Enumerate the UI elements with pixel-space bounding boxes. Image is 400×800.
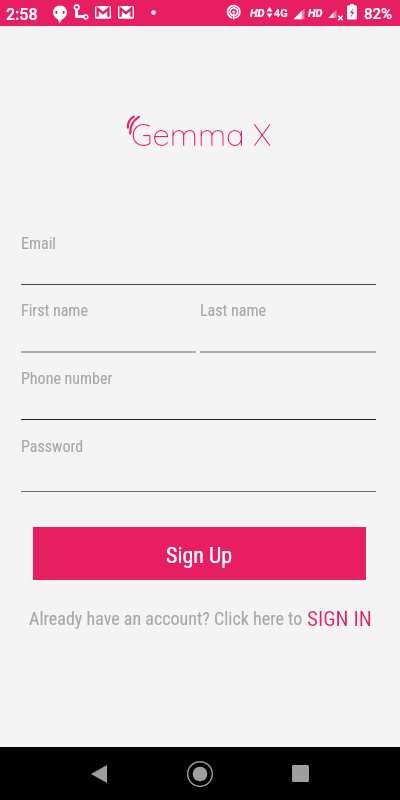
button[interactable]: Home [165, 747, 235, 800]
button[interactable]: First name [21, 301, 196, 357]
button[interactable]: Recent apps [265, 747, 335, 800]
staticText: Gemma X [131, 115, 272, 154]
button[interactable]: Phone number [21, 369, 376, 425]
button[interactable]: Email [21, 234, 376, 290]
staticText: HD [308, 7, 323, 20]
staticText: Already have an account? Click here to [29, 608, 303, 629]
staticText: First name [21, 301, 88, 320]
button[interactable]: Last name [200, 301, 376, 357]
staticText: Password [21, 437, 84, 456]
staticText: HD [250, 7, 265, 20]
button[interactable]: Password [21, 437, 376, 497]
staticText: 82% [364, 5, 393, 23]
staticText: Sign Up [166, 543, 233, 569]
button[interactable]: Sign Up [33, 527, 366, 580]
button[interactable]: SIGN IN [307, 607, 372, 632]
staticText: 2:58 [6, 5, 38, 24]
staticText: SIGN IN [307, 607, 372, 632]
button[interactable]: Back [64, 747, 134, 800]
staticText: Last name [200, 301, 266, 320]
staticText: 4G [274, 7, 288, 20]
staticText: Phone number [21, 369, 113, 388]
staticText: Email [21, 234, 57, 253]
